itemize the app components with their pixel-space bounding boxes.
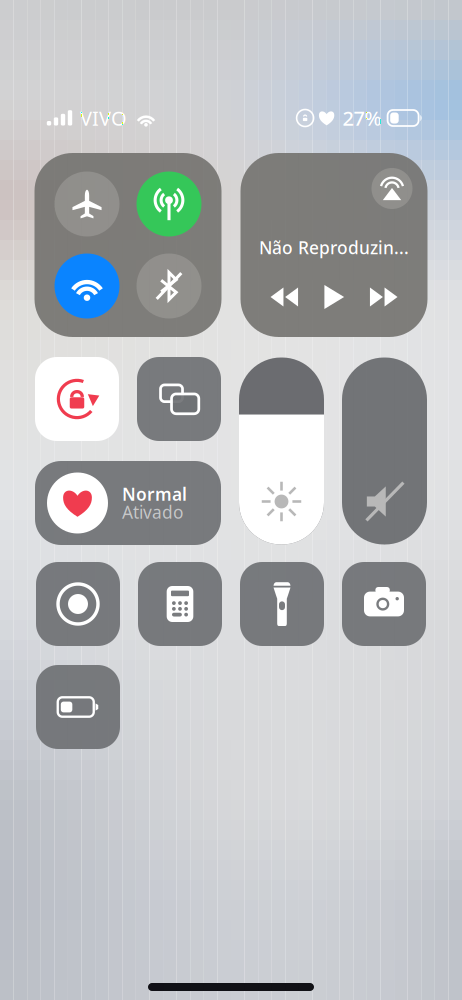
button[interactable]: AirPlay xyxy=(371,168,412,209)
button[interactable]: Camera xyxy=(342,562,426,646)
button[interactable]: Play xyxy=(322,285,346,309)
button[interactable]: Rewind xyxy=(270,287,298,306)
staticText: Ativado xyxy=(122,500,183,523)
staticText: Não Reproduzin... xyxy=(259,236,409,259)
button[interactable]: Brightness xyxy=(239,357,324,544)
button[interactable]: Low Power Mode xyxy=(36,665,120,749)
staticText: VIVO xyxy=(80,105,127,131)
staticText: 27% xyxy=(343,105,382,131)
button[interactable]: Screen Recording xyxy=(36,562,120,646)
button[interactable]: Screen Mirroring xyxy=(137,357,221,441)
button[interactable]: Focus Normal xyxy=(35,461,221,545)
button[interactable]: Calculator xyxy=(138,562,222,646)
button[interactable]: Volume xyxy=(342,357,427,544)
button[interactable]: Wi-Fi xyxy=(54,253,119,318)
button[interactable]: Flashlight xyxy=(240,562,324,646)
button[interactable]: Bluetooth xyxy=(136,253,201,318)
button[interactable]: Cellular Data xyxy=(136,171,201,236)
button[interactable]: Fast Forward xyxy=(370,287,397,306)
button[interactable]: Airplane Mode xyxy=(54,171,119,236)
staticText: Normal xyxy=(122,482,187,505)
button[interactable]: Rotation Lock xyxy=(35,357,119,441)
